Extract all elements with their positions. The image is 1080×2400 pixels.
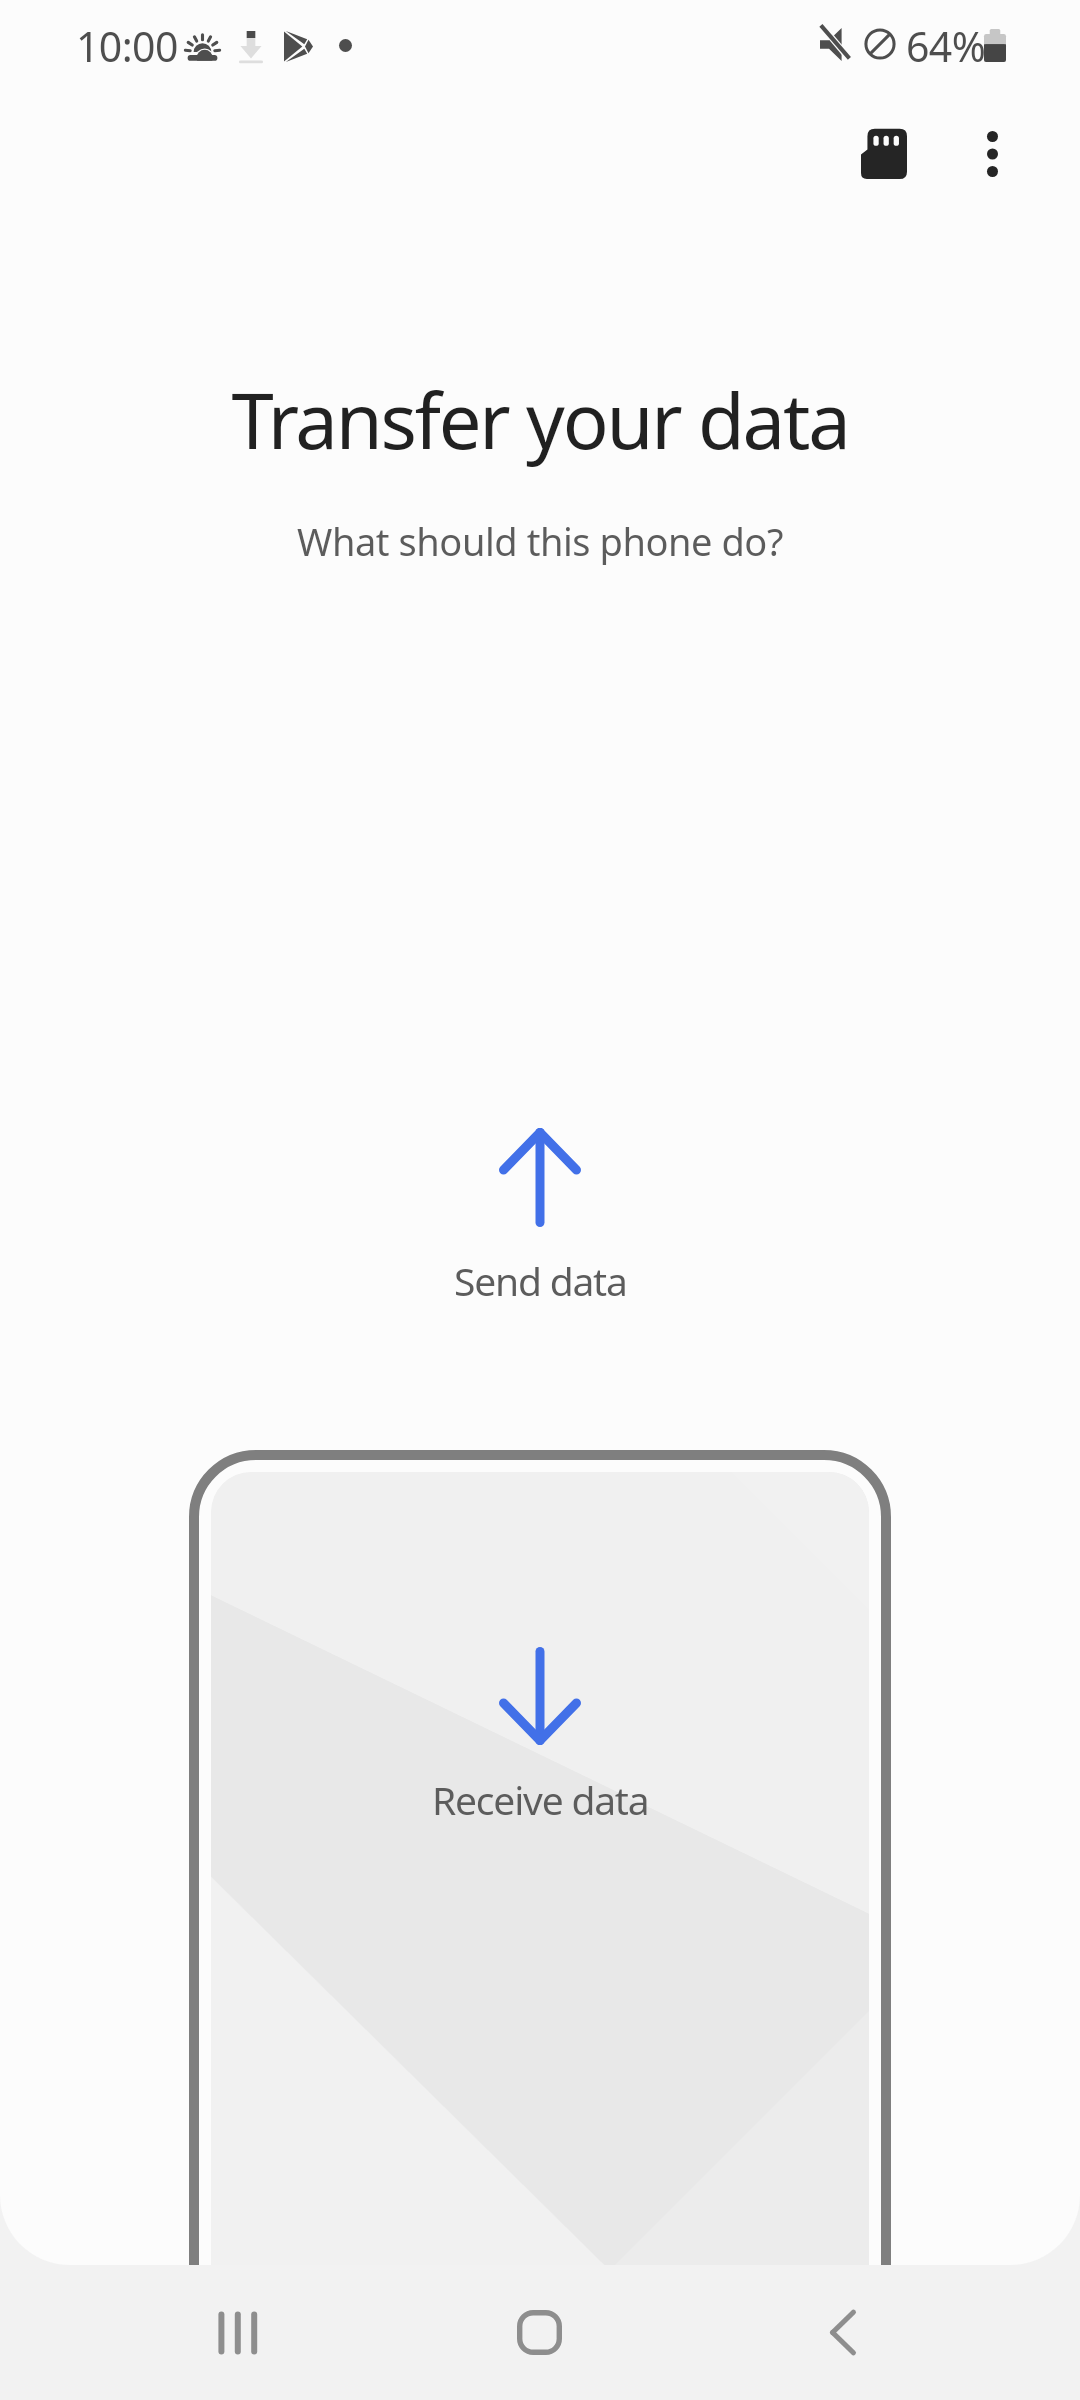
staticText: What should this phone do? bbox=[297, 515, 783, 567]
button[interactable]: Receive data bbox=[189, 1450, 891, 2265]
button[interactable]: Home bbox=[472, 2265, 607, 2400]
staticText: 10:00 bbox=[76, 18, 178, 74]
button[interactable]: Recent apps bbox=[170, 2265, 305, 2400]
button[interactable]: Memory card bbox=[821, 91, 946, 216]
staticText: Receive data bbox=[432, 1773, 649, 1826]
staticText: Send data bbox=[454, 1254, 627, 1307]
staticText: Transfer your data bbox=[231, 368, 849, 472]
staticText: 64% bbox=[906, 18, 986, 74]
button[interactable]: More options bbox=[930, 91, 1055, 216]
button[interactable]: Send data bbox=[340, 1100, 740, 1330]
button[interactable]: Back bbox=[775, 2265, 910, 2400]
